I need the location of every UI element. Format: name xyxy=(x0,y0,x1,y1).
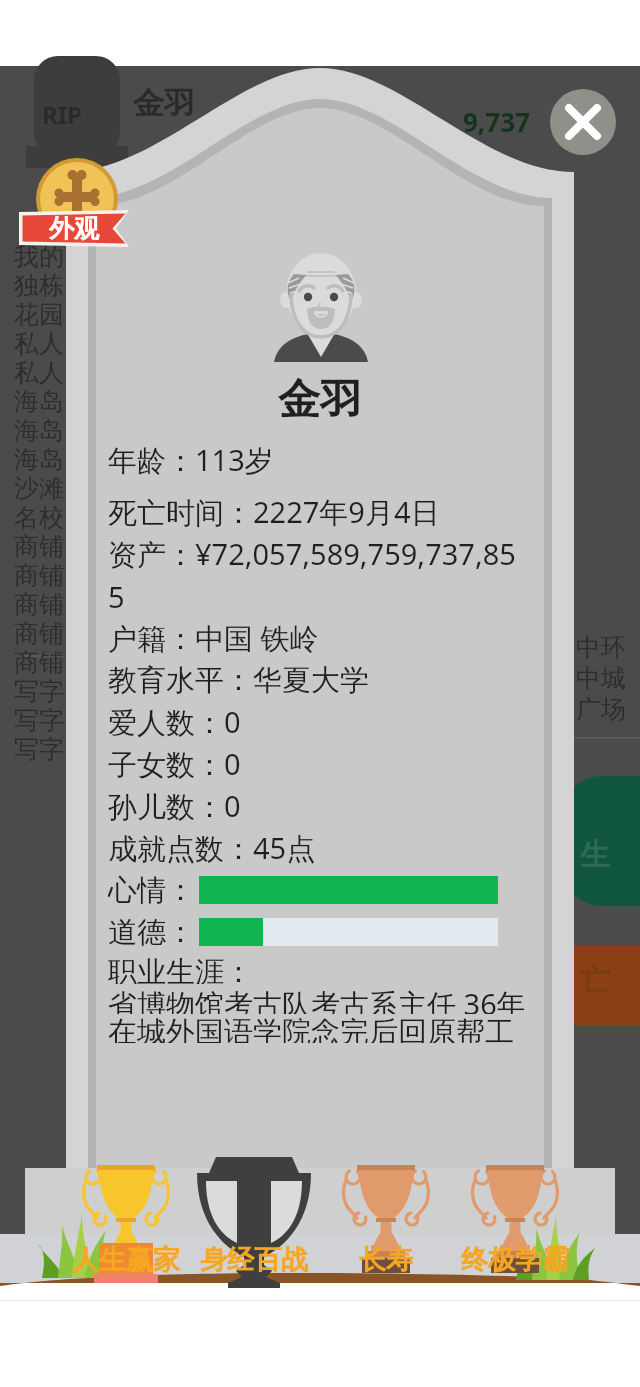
staticText: 私人 xyxy=(14,357,64,386)
staticText: 5 xyxy=(108,577,125,616)
staticText: 广场 xyxy=(576,694,626,725)
staticText: 资产：¥72,057,589,759,737,85 xyxy=(108,534,516,574)
staticText: RIP xyxy=(42,98,82,131)
staticText: 省博物馆考古队考古系主任 36年 xyxy=(108,984,524,1014)
staticText: 爱人数：0 xyxy=(108,702,241,742)
staticText: 商铺 xyxy=(14,531,64,560)
staticText: 私人 xyxy=(14,328,64,357)
staticText: 商铺 xyxy=(14,560,64,589)
staticText: 商铺 xyxy=(14,589,64,618)
staticText: 名校 xyxy=(14,502,64,531)
staticText: 商铺 xyxy=(14,618,64,647)
staticText: 海岛 xyxy=(14,415,64,444)
staticText: 成就点数：45点 xyxy=(108,828,316,868)
staticText: 生 xyxy=(580,836,610,874)
button[interactable]: 终极学霸 xyxy=(440,1242,590,1278)
staticText: 死亡时间：2227年9月4日 xyxy=(108,492,440,532)
staticText: 独栋 xyxy=(14,270,64,299)
staticText: 在城外国语学院念完后回原帮工 xyxy=(108,1014,514,1043)
button[interactable]: 外观 xyxy=(19,210,129,247)
staticText: 道德： xyxy=(108,914,195,951)
staticText: 户籍：中国 铁岭 xyxy=(108,618,319,658)
staticText: 年龄：113岁 xyxy=(108,440,274,480)
button[interactable]: 外观 xyxy=(36,158,118,240)
staticText: 写字 xyxy=(14,705,64,734)
staticText: 沙滩 xyxy=(14,473,64,502)
button[interactable]: 身经百战 xyxy=(179,1242,329,1278)
button[interactable]: Close xyxy=(550,89,616,155)
staticText: 金羽 xyxy=(96,374,544,427)
staticText: 9,737 xyxy=(463,104,530,139)
staticText: 海岛 xyxy=(14,444,64,473)
staticText: 教育水平：华夏大学 xyxy=(108,662,369,699)
staticText: 人生赢家 xyxy=(72,1243,180,1277)
staticText: 职业生涯： xyxy=(108,954,253,984)
staticText: 商铺 xyxy=(14,647,64,676)
button[interactable]: 长寿 xyxy=(311,1242,461,1278)
staticText: 孙儿数：0 xyxy=(108,786,241,826)
staticText: 花园 xyxy=(14,299,64,328)
staticText: 亡 xyxy=(580,961,610,999)
staticText: 终极学霸 xyxy=(461,1243,569,1277)
staticText: 外观 xyxy=(49,213,99,244)
staticText: 写字 xyxy=(14,676,64,705)
staticText: 子女数：0 xyxy=(108,744,241,784)
staticText: 心情： xyxy=(108,872,195,909)
staticText: 身经百战 xyxy=(200,1243,308,1277)
staticText: 中城 xyxy=(576,663,626,694)
staticText: 中环 xyxy=(576,632,626,663)
staticText: 金羽 xyxy=(133,84,195,123)
button[interactable]: 人生赢家 xyxy=(51,1242,201,1278)
staticText: 海岛 xyxy=(14,386,64,415)
staticText: 写字 xyxy=(14,734,64,763)
staticText: 我的 xyxy=(14,241,64,270)
staticText: 长寿 xyxy=(359,1243,413,1277)
